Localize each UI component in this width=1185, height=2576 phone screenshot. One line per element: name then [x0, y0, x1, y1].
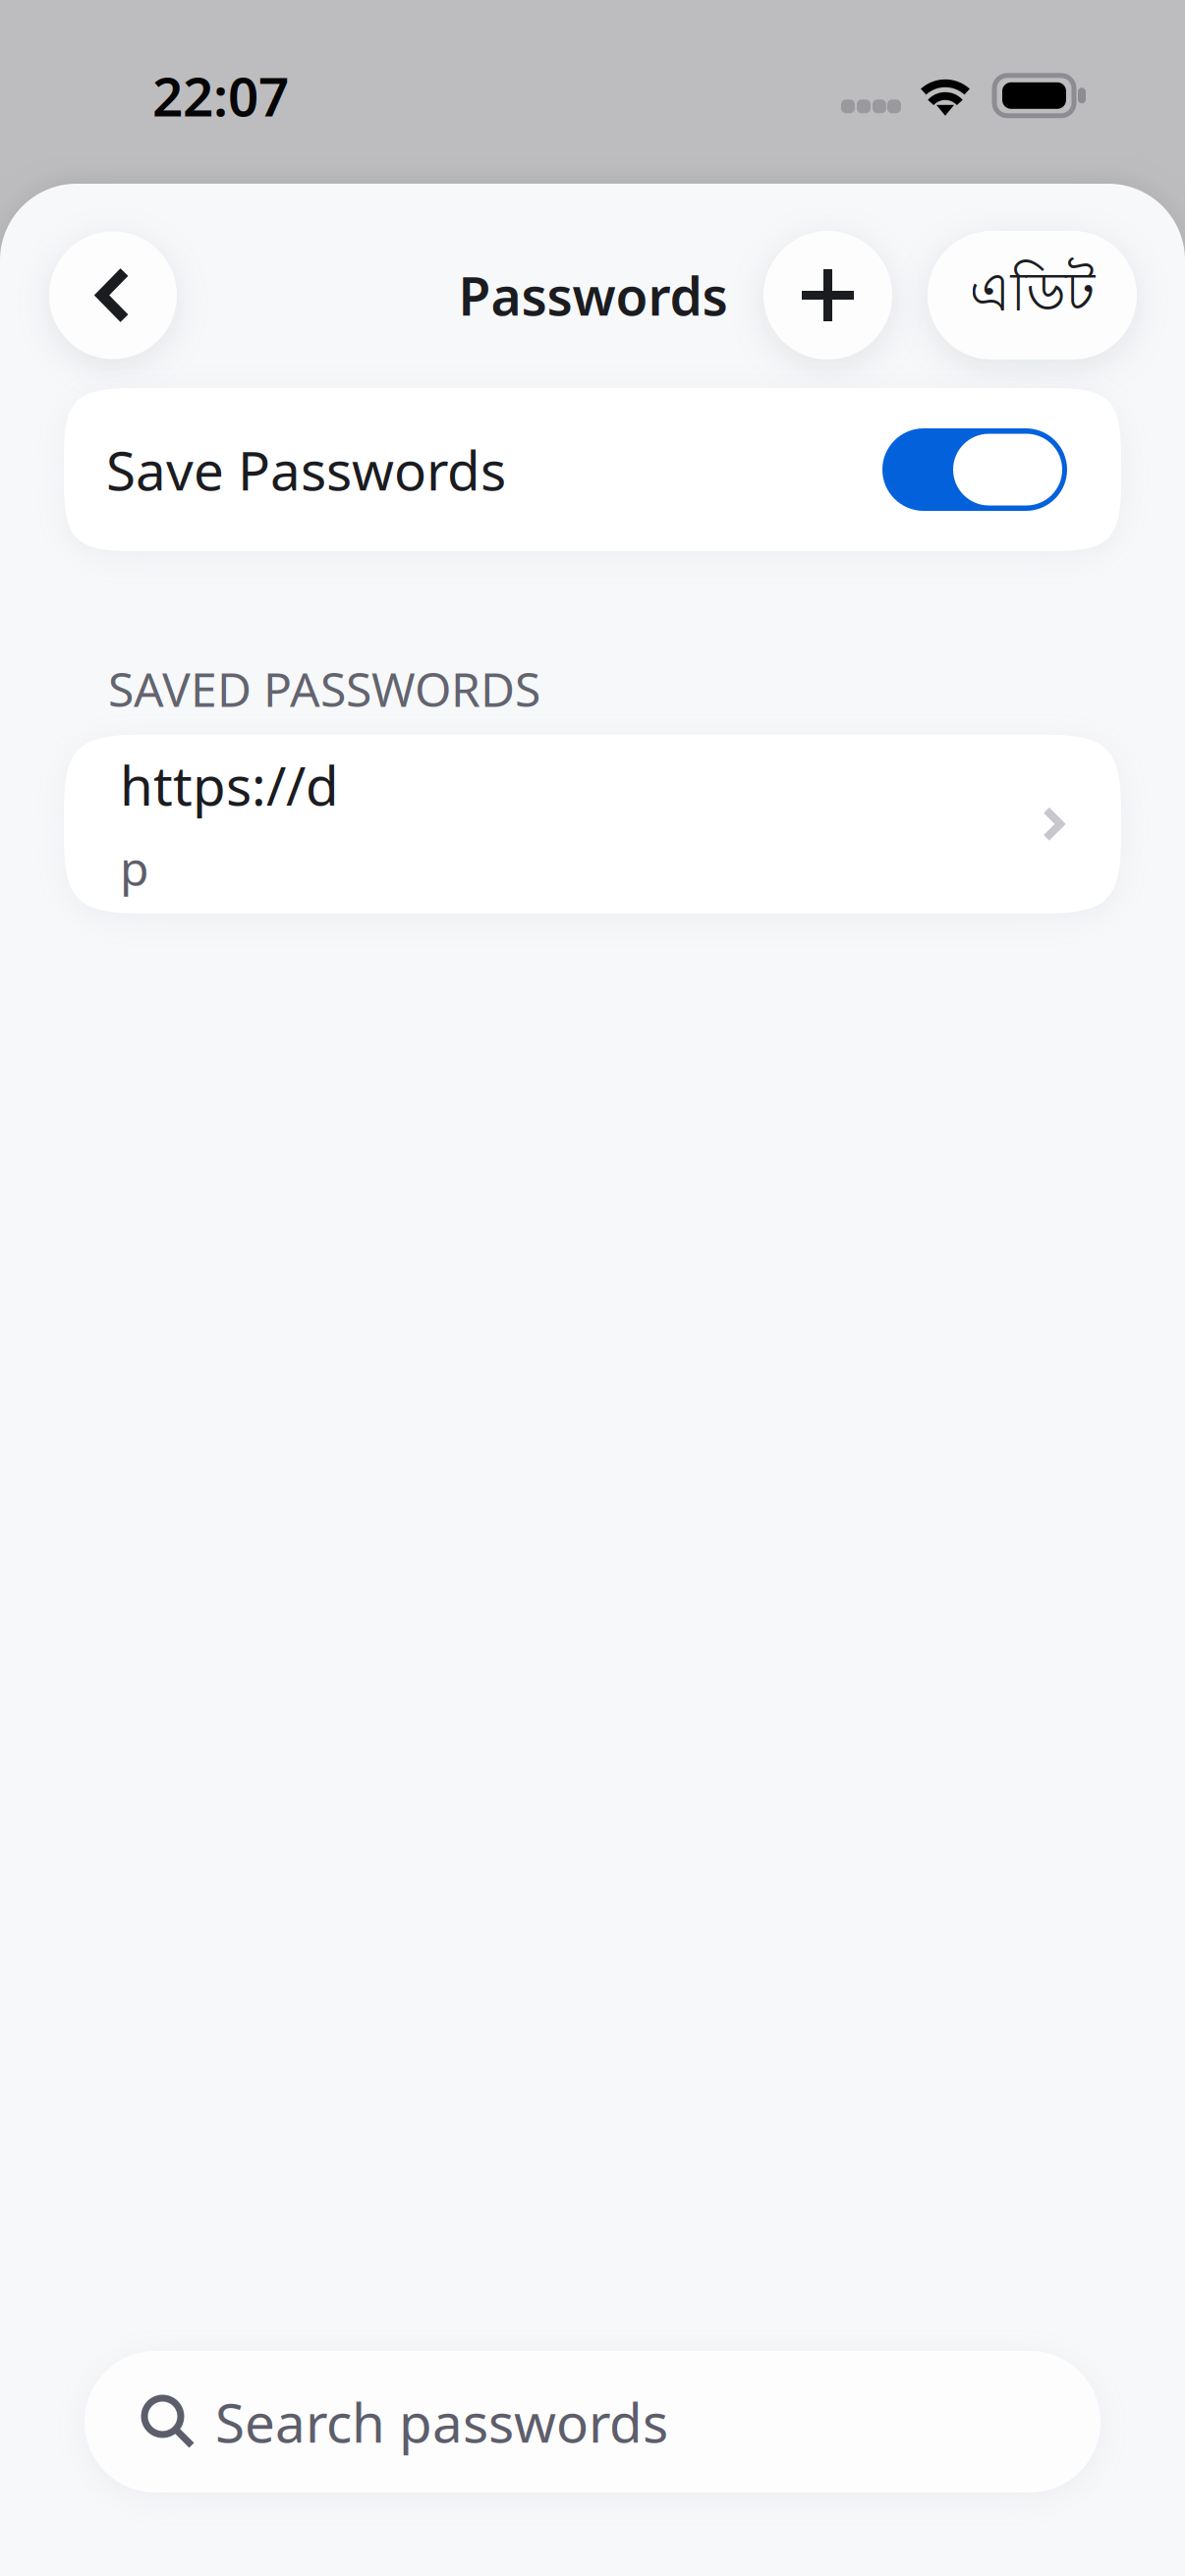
staticText: 22:07 — [152, 60, 289, 131]
staticText: https://d — [120, 749, 339, 821]
staticText: p — [120, 836, 149, 899]
staticText: Save Passwords — [106, 434, 506, 505]
button[interactable]: এডিট — [928, 231, 1137, 360]
staticText: এডিট — [969, 258, 1095, 332]
staticText: Search passwords — [215, 2386, 668, 2457]
staticText: Passwords — [458, 260, 728, 330]
button[interactable]: Search passwords — [0, 2351, 1185, 2492]
staticText: SAVED PASSWORDS — [108, 657, 540, 720]
button[interactable]: Back — [49, 231, 177, 359]
button[interactable]: Add password — [763, 231, 892, 360]
button[interactable]: https://d — [0, 735, 1185, 913]
